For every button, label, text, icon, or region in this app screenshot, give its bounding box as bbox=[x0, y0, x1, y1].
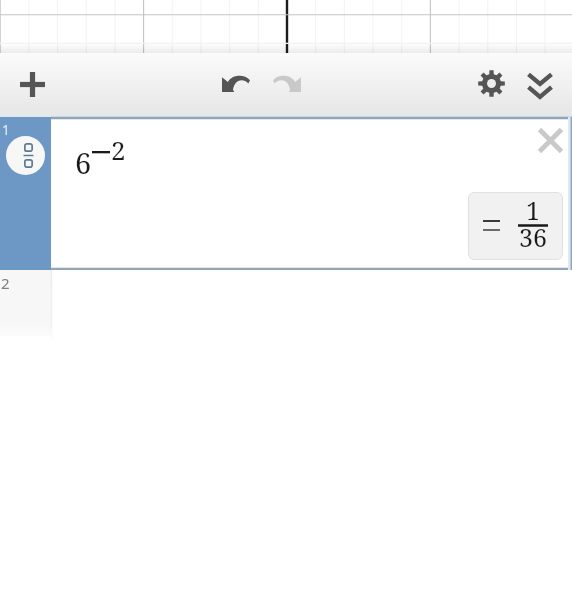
staticText: 1 bbox=[526, 193, 540, 227]
staticText: 1 bbox=[2, 120, 11, 139]
staticText: 2 bbox=[111, 132, 126, 167]
button[interactable]: Add expression bbox=[10, 62, 54, 106]
button[interactable]: Undo bbox=[214, 60, 258, 104]
button[interactable]: 1 bbox=[0, 117, 572, 270]
staticText: 2 bbox=[1, 273, 10, 293]
button[interactable]: Settings bbox=[469, 61, 513, 105]
staticText: 36 bbox=[519, 220, 547, 254]
button[interactable]: 2 bbox=[0, 270, 572, 340]
button[interactable]: Delete expression bbox=[531, 121, 569, 159]
button[interactable]: Redo bbox=[265, 60, 309, 104]
staticText: 6 bbox=[75, 143, 92, 182]
button[interactable]: Collapse keypad bbox=[518, 64, 562, 108]
button[interactable]: Fraction bbox=[6, 136, 45, 175]
button[interactable]: Result equals one thirty-sixth bbox=[468, 192, 563, 260]
